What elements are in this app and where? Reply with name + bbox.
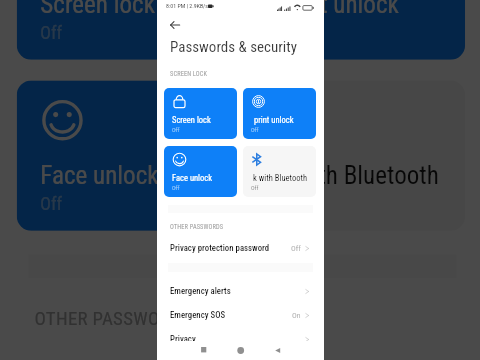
staticText: Screen lock bbox=[172, 115, 211, 125]
staticText: Off bbox=[251, 184, 259, 191]
staticText: Screen lock bbox=[40, 0, 155, 18]
staticText: Off bbox=[273, 192, 297, 213]
staticText: Emergency SOS bbox=[170, 310, 226, 320]
button[interactable]: Face unlock bbox=[164, 146, 237, 197]
button[interactable]: Navigate up bbox=[165, 15, 185, 35]
staticText: OTHER PASSWORDS bbox=[170, 223, 224, 231]
staticText: Off bbox=[251, 126, 259, 133]
staticText: Privacy bbox=[170, 334, 196, 344]
staticText: Off bbox=[273, 21, 297, 42]
staticText: Off bbox=[172, 126, 180, 133]
staticText: Passwords & security bbox=[170, 38, 297, 56]
staticText: OTHER PASSWORDS bbox=[34, 308, 194, 331]
button[interactable]: Emergency SOS bbox=[157, 303, 324, 327]
staticText: k with Bluetooth bbox=[279, 160, 442, 190]
staticText: print unlock bbox=[254, 115, 294, 125]
button[interactable]: print unlock bbox=[243, 88, 316, 139]
staticText: Off bbox=[172, 184, 180, 191]
staticText: SCREEN LOCK bbox=[170, 70, 207, 78]
staticText: Off bbox=[291, 244, 301, 253]
button[interactable]: k with Bluetooth bbox=[243, 146, 316, 197]
button[interactable]: Screen lock bbox=[164, 88, 237, 139]
staticText: print unlock bbox=[282, 0, 400, 18]
button[interactable]: Recents bbox=[195, 342, 211, 358]
button[interactable]: Back bbox=[269, 342, 285, 358]
staticText: k with Bluetooth bbox=[253, 173, 308, 183]
staticText: Face unlock bbox=[172, 173, 213, 183]
staticText: Emergency alerts bbox=[170, 286, 231, 296]
staticText: Privacy protection password bbox=[170, 243, 270, 253]
button[interactable]: Home bbox=[232, 342, 248, 358]
button[interactable]: Privacy protection password bbox=[157, 236, 324, 260]
staticText: Face unlock bbox=[40, 160, 161, 190]
staticText: Off bbox=[40, 192, 64, 213]
button[interactable]: Emergency alerts bbox=[157, 279, 324, 303]
staticText: Off bbox=[40, 21, 64, 42]
staticText: 8:01 PM | 2.9KB/s bbox=[166, 3, 208, 10]
staticText: On bbox=[292, 311, 301, 320]
button[interactable]: Privacy bbox=[157, 327, 324, 351]
